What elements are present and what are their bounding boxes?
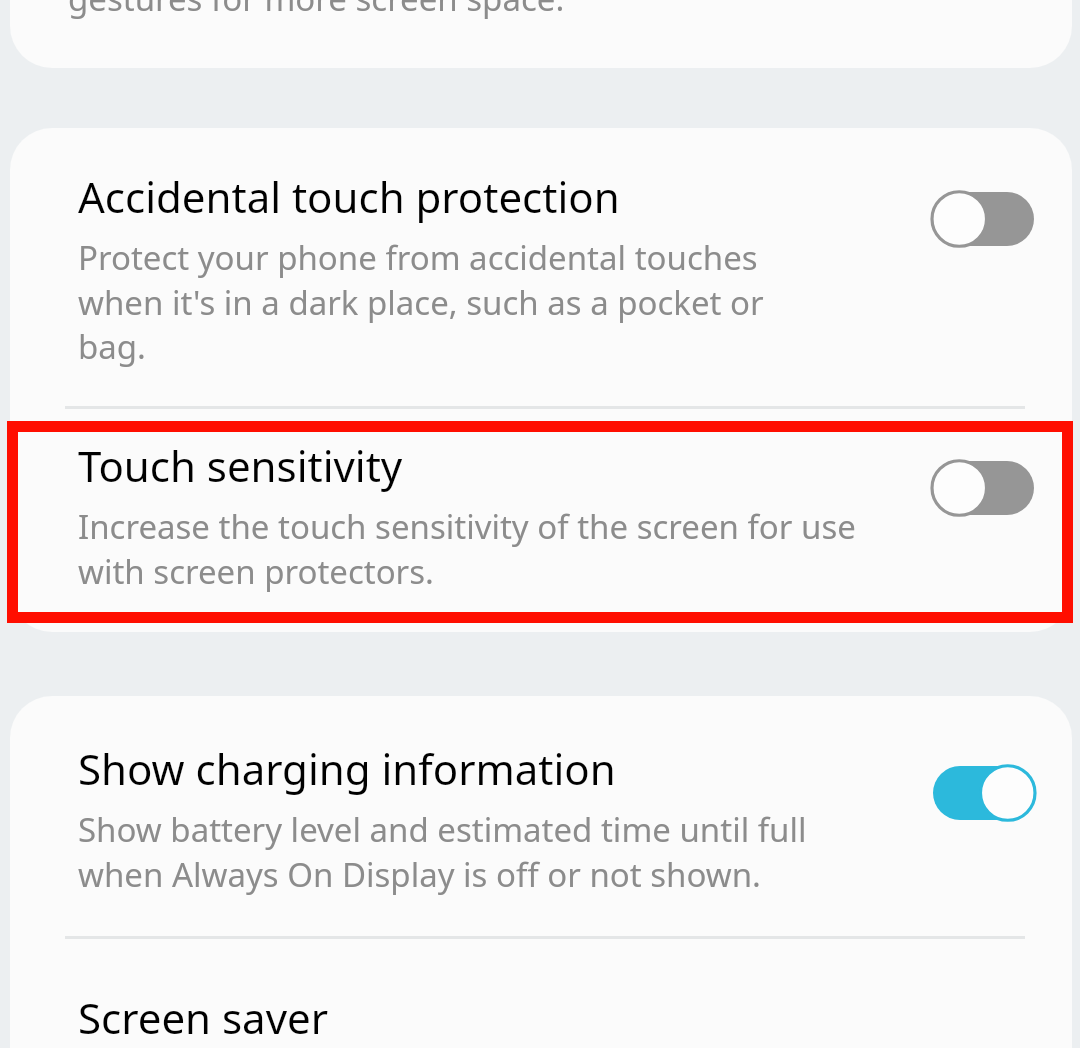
staticText: Show charging information xyxy=(78,740,616,797)
staticText: Screen saver xyxy=(78,989,329,1046)
button[interactable]: Accidental touch protection xyxy=(10,128,1072,368)
staticText: Protect your phone from accidental touch… xyxy=(78,235,808,368)
staticText: Show battery level and estimated time un… xyxy=(78,807,878,896)
button[interactable]: Show charging information xyxy=(918,748,1048,838)
button[interactable]: Screen saver xyxy=(10,939,1072,1046)
staticText: Increase the touch sensitivity of the sc… xyxy=(78,504,868,593)
button[interactable]: Touch sensitivity xyxy=(918,443,1048,533)
staticText: gestures for more screen space. xyxy=(68,0,565,21)
staticText: Accidental touch protection xyxy=(78,168,620,225)
button[interactable]: Touch sensitivity xyxy=(10,409,1072,593)
button[interactable]: Show charging information xyxy=(10,696,1072,896)
staticText: Touch sensitivity xyxy=(78,437,403,494)
button[interactable]: Accidental touch protection xyxy=(918,174,1048,264)
button[interactable]: gestures for more screen space. xyxy=(10,0,1072,68)
